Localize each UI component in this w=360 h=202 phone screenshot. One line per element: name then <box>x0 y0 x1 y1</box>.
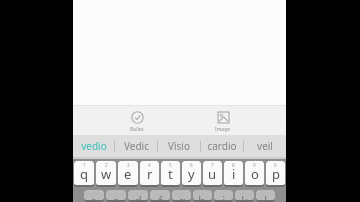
staticText: d <box>134 192 142 200</box>
staticText: g <box>178 192 186 200</box>
staticText: 4 <box>148 162 151 168</box>
button[interactable]: 4 <box>140 161 159 185</box>
staticText: i <box>232 165 236 183</box>
button[interactable]: Image <box>201 105 245 135</box>
button[interactable]: & <box>128 190 148 200</box>
staticText: s <box>113 192 120 200</box>
staticText: 3 <box>127 162 130 168</box>
button[interactable]: Visio <box>158 135 200 157</box>
staticText: 1 <box>83 162 86 168</box>
staticText: cardio <box>207 139 237 153</box>
staticText: 8 <box>232 162 235 168</box>
staticText: = <box>264 191 267 197</box>
staticText: e <box>124 165 132 183</box>
staticText: k <box>241 192 248 200</box>
staticText: veil <box>257 139 273 153</box>
staticText: p <box>272 165 280 183</box>
button[interactable]: 0 <box>266 161 285 185</box>
staticText: l <box>264 192 268 200</box>
button[interactable]: ) <box>193 190 212 200</box>
staticText: Image <box>215 126 231 133</box>
button[interactable]: veil <box>244 135 286 157</box>
staticText: r <box>147 165 153 183</box>
staticText: 0 <box>274 162 277 168</box>
staticText: Bullet <box>130 126 144 133</box>
button[interactable]: + <box>235 190 254 200</box>
button[interactable]: 6 <box>182 161 201 185</box>
staticText: a <box>90 192 98 200</box>
staticText: 9 <box>253 162 256 168</box>
staticText: vedio <box>81 139 107 153</box>
button[interactable]: ( <box>172 190 191 200</box>
button[interactable]: 1 <box>74 161 94 185</box>
button[interactable]: 8 <box>224 161 243 185</box>
button[interactable]: 3 <box>118 161 138 185</box>
staticText: Visio <box>168 139 190 153</box>
staticText: o <box>251 165 259 183</box>
button[interactable]: Vedic <box>115 135 157 157</box>
button[interactable]: 7 <box>203 161 222 185</box>
staticText: f <box>158 192 163 200</box>
staticText: t <box>168 165 173 183</box>
staticText: 6 <box>190 162 193 168</box>
button[interactable]: cardio <box>201 135 243 157</box>
staticText: h <box>198 192 207 200</box>
button[interactable]: vedio <box>73 135 114 157</box>
staticText: y <box>188 165 195 183</box>
button[interactable]: Bullet <box>115 105 159 135</box>
staticText: j <box>222 192 226 200</box>
staticText: q <box>80 165 88 183</box>
staticText: u <box>208 165 217 183</box>
button[interactable]: - <box>214 190 233 200</box>
button[interactable]: # <box>106 190 126 200</box>
button[interactable]: = <box>256 190 275 200</box>
staticText: 2 <box>105 162 108 168</box>
staticText: 7 <box>211 162 214 168</box>
button[interactable]: @ <box>84 190 104 200</box>
staticText: - <box>223 191 225 197</box>
staticText: w <box>101 165 112 183</box>
staticText: Vedic <box>124 139 149 153</box>
button[interactable]: 5 <box>161 161 180 185</box>
button[interactable]: 9 <box>245 161 264 185</box>
button[interactable]: 2 <box>96 161 116 185</box>
button[interactable]: _ <box>150 190 170 200</box>
staticText: 5 <box>169 162 172 168</box>
staticText: _ <box>159 191 161 197</box>
